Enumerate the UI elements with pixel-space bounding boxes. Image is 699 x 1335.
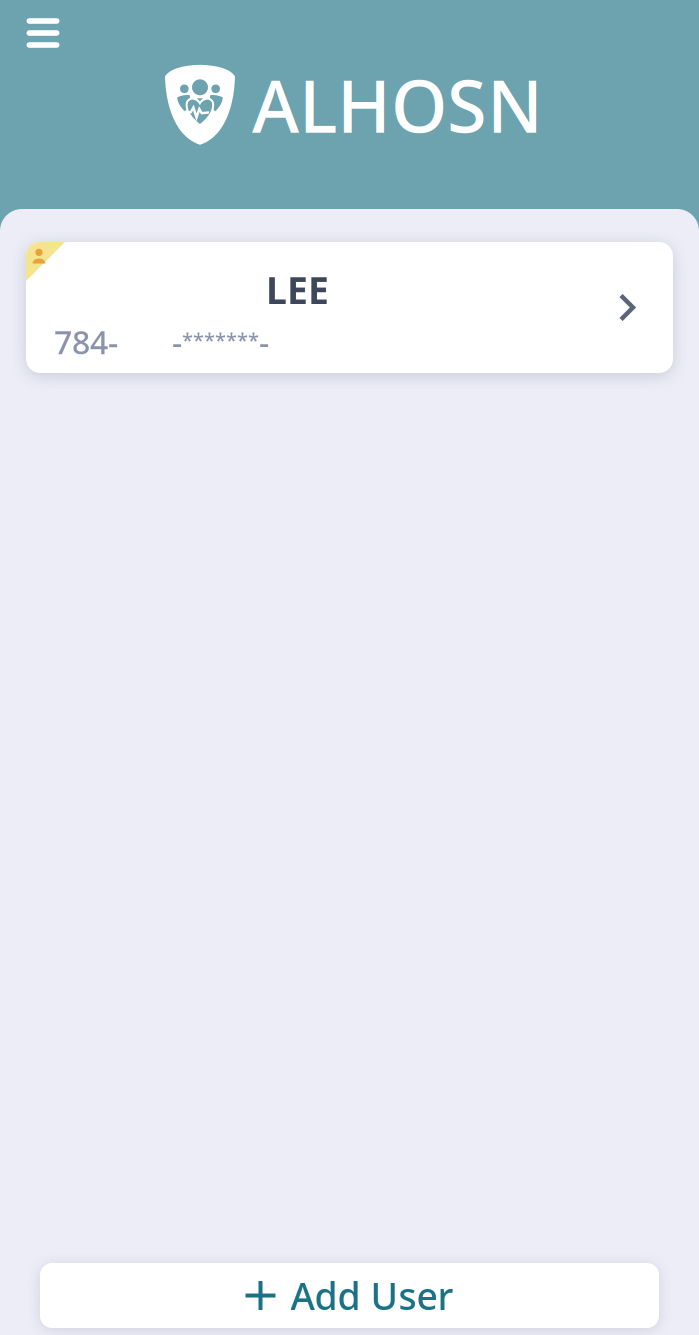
staticText: ALHOSN (252, 57, 543, 153)
staticText: 784- (54, 321, 118, 363)
staticText: ******* (182, 326, 259, 353)
staticText: - (172, 321, 182, 363)
button[interactable]: LEE (0, 242, 699, 373)
staticText: LEE (266, 265, 329, 315)
button[interactable]: Add User (0, 1263, 699, 1328)
staticText: - (259, 321, 269, 363)
button[interactable]: Menu (13, 9, 73, 57)
staticText: Add User (290, 1271, 453, 1320)
